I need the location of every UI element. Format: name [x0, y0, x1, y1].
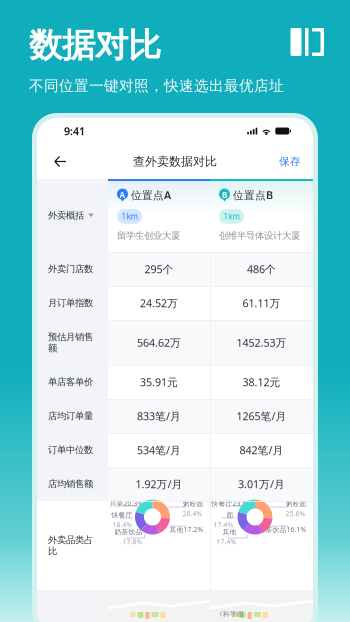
staticText: 3.01万/月: [238, 477, 285, 491]
staticText: 1.92万/月: [135, 477, 182, 491]
staticText: 订单中位数: [48, 444, 93, 456]
staticText: 保存: [279, 155, 301, 168]
staticText: 其他: [222, 528, 236, 536]
staticText: 外卖概括: [48, 210, 84, 221]
staticText: 粥粉面: [182, 500, 203, 508]
staticText: 预估月销售额: [48, 331, 93, 354]
staticText: 564.62万: [137, 335, 181, 350]
staticText: 1452.53万: [236, 335, 286, 350]
staticText: 《科学园: [216, 610, 244, 618]
staticText: 外卖品类占比: [48, 534, 93, 557]
button[interactable]: 保存: [273, 144, 307, 178]
staticText: A: [119, 190, 125, 200]
staticText: 其他17.2%: [169, 525, 203, 534]
staticText: 粥粉面: [285, 500, 306, 508]
staticText: 奶茶饮品16.1%: [258, 525, 306, 534]
staticText: 数据对比: [29, 25, 161, 66]
staticText: 17.4%: [216, 537, 236, 546]
staticText: 不同位置一键对照，快速选出最优店址: [29, 77, 284, 95]
staticText: 快餐厅: [111, 511, 132, 519]
staticText: 9:41: [64, 124, 85, 138]
staticText: 店均销售额: [48, 478, 93, 490]
staticText: 店均订单量: [48, 410, 93, 422]
staticText: 35.91元: [140, 375, 178, 389]
staticText: 面: [226, 511, 233, 519]
staticText: 26.4%: [182, 509, 202, 518]
staticText: 月订单指数: [48, 297, 93, 309]
staticText: 川菜20.3%: [109, 499, 143, 508]
staticText: 833笔/月: [137, 409, 181, 423]
staticText: 单店客单价: [48, 376, 93, 388]
staticText: 留学生创业大厦: [117, 230, 180, 241]
staticText: 1265笔/月: [236, 409, 286, 423]
staticText: 奶茶饮品: [114, 528, 142, 536]
staticText: 61.11万: [242, 296, 280, 310]
staticText: 295个: [144, 262, 173, 276]
staticText: 1km: [121, 211, 137, 222]
staticText: 位置点A: [131, 188, 171, 202]
staticText: 17.8%: [122, 537, 142, 546]
staticText: 24.52万: [140, 296, 178, 310]
staticText: 位置点B: [233, 188, 273, 202]
staticText: 18.4%: [112, 520, 132, 529]
staticText: 17.4%: [213, 520, 233, 529]
staticText: 534笔/月: [137, 443, 181, 457]
staticText: 外卖门店数: [48, 263, 93, 275]
staticText: 486个: [247, 262, 276, 276]
staticText: 25.6%: [285, 509, 305, 518]
button[interactable]: 返回: [43, 144, 77, 178]
staticText: 快餐厅23.6%: [211, 499, 252, 508]
staticText: B: [222, 190, 227, 200]
staticText: 38.12元: [242, 375, 280, 389]
staticText: 创维半导体设计大厦: [219, 230, 300, 241]
staticText: 查外卖数据对比: [133, 154, 217, 169]
staticText: 1km: [223, 211, 239, 222]
staticText: 842笔/月: [239, 443, 283, 457]
